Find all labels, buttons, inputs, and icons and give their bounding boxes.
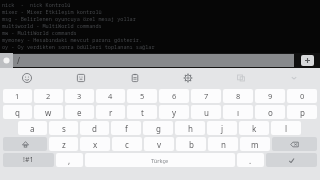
staticText: q xyxy=(15,107,20,118)
staticText: y xyxy=(172,107,177,118)
button[interactable]: g xyxy=(143,121,173,135)
button[interactable]: b xyxy=(176,137,206,151)
staticText: 9 xyxy=(268,91,273,101)
button[interactable]: d xyxy=(80,121,109,135)
button[interactable]: 9 xyxy=(255,89,285,103)
button[interactable]: ı xyxy=(223,105,253,119)
staticText: oy - Oy verdikten sonra ödülleri toplana… xyxy=(2,43,155,50)
staticText: . xyxy=(249,155,252,166)
button[interactable]: l xyxy=(271,121,301,135)
staticText: w xyxy=(45,107,52,118)
button[interactable]: 0 xyxy=(287,89,317,103)
staticText: !#1 xyxy=(23,155,34,165)
staticText: , xyxy=(68,155,71,166)
button[interactable]: f xyxy=(111,121,141,135)
staticText: t xyxy=(141,107,144,118)
staticText: k xyxy=(252,123,257,134)
button[interactable]: a xyxy=(18,121,47,135)
staticText: / xyxy=(17,55,20,66)
button[interactable]: s xyxy=(49,121,78,135)
button[interactable]: v xyxy=(144,137,174,151)
button[interactable]: Settings xyxy=(161,68,214,87)
button[interactable]: t xyxy=(127,105,157,119)
button[interactable]: c xyxy=(112,137,142,151)
staticText: Türkçe xyxy=(151,157,169,164)
staticText: o xyxy=(268,107,273,118)
staticText: v xyxy=(157,139,162,150)
staticText: 8 xyxy=(236,91,241,101)
staticText: l xyxy=(285,123,288,134)
button[interactable]: x xyxy=(80,137,110,151)
button[interactable]: Voice input xyxy=(0,53,13,68)
button[interactable]: n xyxy=(208,137,238,151)
staticText: 1 xyxy=(15,91,20,101)
staticText: f xyxy=(125,123,128,134)
button[interactable]: q xyxy=(3,105,32,119)
button[interactable]: 2 xyxy=(34,89,63,103)
button[interactable]: m xyxy=(240,137,270,151)
staticText: e xyxy=(77,107,82,118)
staticText: x xyxy=(93,139,98,150)
staticText: nick - nick Kontrolü xyxy=(2,1,71,8)
button[interactable]: w xyxy=(34,105,63,119)
button[interactable]: h xyxy=(175,121,205,135)
staticText: z xyxy=(62,139,66,150)
button[interactable]: Clipboard xyxy=(108,68,161,87)
button[interactable]: Emoji xyxy=(0,68,54,87)
button[interactable]: Add xyxy=(301,55,314,66)
button[interactable]: j xyxy=(207,121,237,135)
button[interactable]: 5 xyxy=(127,89,157,103)
staticText: 5 xyxy=(140,91,145,101)
button[interactable]: r xyxy=(96,105,125,119)
staticText: ı xyxy=(237,107,240,118)
button[interactable]: o xyxy=(255,105,285,119)
button[interactable]: , xyxy=(56,153,83,167)
button[interactable]: . xyxy=(237,153,264,167)
staticText: r xyxy=(109,107,113,118)
button[interactable]: Stickers xyxy=(54,68,108,87)
staticText: 2 xyxy=(46,91,51,101)
staticText: multiworld - MultiWorld commands xyxy=(2,22,102,29)
button[interactable]: GIF xyxy=(214,68,267,87)
button[interactable]: Enter xyxy=(266,153,317,167)
button[interactable]: z xyxy=(49,137,78,151)
button[interactable]: u xyxy=(191,105,221,119)
button[interactable]: 3 xyxy=(65,89,94,103)
staticText: 4 xyxy=(108,91,113,101)
staticText: p xyxy=(300,107,305,118)
staticText: s xyxy=(62,123,66,134)
staticText: 3 xyxy=(77,91,82,101)
button[interactable]: 4 xyxy=(96,89,125,103)
button[interactable]: p xyxy=(287,105,317,119)
button[interactable]: e xyxy=(65,105,94,119)
button[interactable]: 6 xyxy=(159,89,189,103)
staticText: g xyxy=(156,123,161,134)
staticText: mw - MultiWorld commands xyxy=(2,29,77,36)
staticText: d xyxy=(92,123,97,134)
staticText: mixer - Mixer Etkileşim kontrolü xyxy=(2,8,102,15)
staticText: j xyxy=(221,123,224,134)
button[interactable]: Türkçe xyxy=(85,153,235,167)
staticText: 7 xyxy=(204,91,209,101)
staticText: n xyxy=(221,139,226,150)
staticText: a xyxy=(30,123,35,134)
staticText: c xyxy=(125,139,129,150)
button[interactable]: 1 xyxy=(3,89,32,103)
button[interactable]: !#1 xyxy=(3,153,54,167)
button[interactable]: Shift xyxy=(3,137,47,151)
button[interactable]: y xyxy=(159,105,189,119)
staticText: b xyxy=(189,139,194,150)
button[interactable]: Backspace xyxy=(272,137,317,151)
staticText: msg - Belirlenen oyuncuya özel mesaj yol… xyxy=(2,15,136,22)
staticText: 0 xyxy=(300,91,305,101)
staticText: mymoney - Hesabındaki mevcut paranı göst… xyxy=(2,36,143,43)
button[interactable]: k xyxy=(239,121,269,135)
staticText: 6 xyxy=(172,91,177,101)
button[interactable]: 8 xyxy=(223,89,253,103)
staticText: h xyxy=(188,123,193,134)
button[interactable]: 7 xyxy=(191,89,221,103)
staticText: m xyxy=(251,139,259,150)
